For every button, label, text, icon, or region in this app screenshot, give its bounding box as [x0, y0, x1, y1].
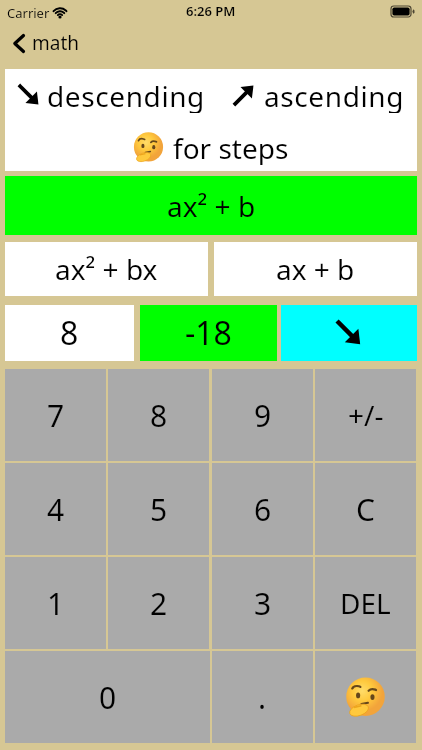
button[interactable]: ax² + b	[5, 176, 417, 235]
button[interactable]: .	[212, 651, 313, 743]
button[interactable]: descending	[5, 69, 417, 171]
staticText: 8	[60, 311, 79, 355]
button[interactable]: 1	[5, 557, 106, 649]
staticText: 7	[47, 395, 65, 436]
button[interactable]	[281, 305, 417, 361]
staticText: for steps	[173, 129, 289, 165]
staticText: -18	[185, 311, 232, 355]
staticText: 0	[99, 677, 117, 718]
staticText: 9	[254, 395, 272, 436]
staticText: 2	[150, 583, 168, 624]
staticText: ax² + b	[167, 187, 256, 225]
button[interactable]: 0	[5, 651, 210, 743]
staticText: descending	[47, 77, 205, 113]
button[interactable]: 5	[108, 463, 209, 555]
staticText: DEL	[340, 584, 391, 622]
staticText: 4	[47, 489, 65, 530]
staticText: +/-	[348, 396, 384, 434]
staticText: ascending	[264, 77, 405, 113]
staticText: 5	[150, 489, 168, 530]
button[interactable]	[315, 651, 416, 743]
staticText: math	[32, 30, 80, 56]
button[interactable]: +/-	[315, 369, 416, 461]
button[interactable]: 2	[108, 557, 209, 649]
staticText: 8	[150, 395, 168, 436]
staticText: 1	[47, 583, 65, 624]
button[interactable]: 9	[212, 369, 313, 461]
staticText: .	[258, 677, 267, 718]
button[interactable]: 7	[5, 369, 106, 461]
staticText: 3	[254, 583, 272, 624]
button[interactable]: DEL	[315, 557, 416, 649]
staticText: ax² + bx	[55, 250, 158, 288]
staticText: Carrier	[7, 4, 50, 22]
staticText: C	[356, 489, 375, 530]
button[interactable]: ax² + bx	[5, 242, 208, 296]
staticText: 6	[254, 489, 272, 530]
button[interactable]: math	[13, 30, 80, 56]
button[interactable]: 8	[108, 369, 209, 461]
button[interactable]: 4	[5, 463, 106, 555]
staticText: 6:26 PM	[186, 2, 236, 20]
staticText: ax + b	[276, 250, 355, 288]
button[interactable]: 8	[5, 305, 134, 361]
button[interactable]: C	[315, 463, 416, 555]
button[interactable]: -18	[140, 305, 277, 361]
button[interactable]: 3	[212, 557, 313, 649]
button[interactable]: ax + b	[214, 242, 417, 296]
button[interactable]: 6	[212, 463, 313, 555]
